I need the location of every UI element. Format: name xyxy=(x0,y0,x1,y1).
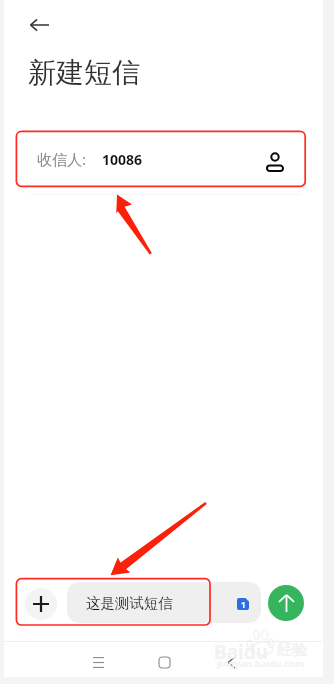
staticText: 经验 xyxy=(277,641,307,660)
button[interactable]: Send xyxy=(268,585,304,621)
staticText: Baidu xyxy=(214,639,269,665)
button[interactable]: 这是测试短信 xyxy=(67,582,261,623)
button[interactable]: Back xyxy=(211,642,251,682)
staticText: 1 xyxy=(241,599,246,610)
button[interactable]: Home xyxy=(144,642,184,682)
staticText: 收信人: xyxy=(37,149,87,169)
staticText: 新建短信 xyxy=(28,55,140,90)
button[interactable]: Back xyxy=(19,5,59,45)
staticText: 这是测试短信 xyxy=(86,594,173,612)
button[interactable]: Add attachment xyxy=(25,588,57,620)
staticText: jingyan.baidu.com xyxy=(217,657,305,670)
button[interactable]: 收信人: xyxy=(16,131,305,187)
button[interactable]: Recent apps xyxy=(78,642,118,682)
staticText: 10086 xyxy=(102,150,143,169)
button[interactable]: Choose contact xyxy=(260,147,290,177)
